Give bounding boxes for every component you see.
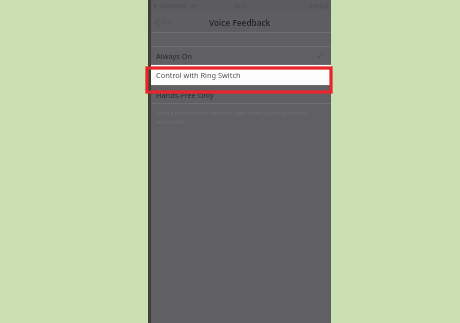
staticText: Voice Feedback (209, 17, 271, 28)
staticText: set to silent. (156, 118, 187, 125)
staticText: Siri will provide voice feedback, even w… (156, 109, 309, 116)
staticText: Hands-Free Only (156, 90, 214, 100)
staticText: Always On (156, 51, 193, 61)
button[interactable]: Control with Ring Switch (148, 65, 331, 85)
staticText: Control with Ring Switch (156, 70, 241, 80)
staticText: TELEKOM.RO (160, 3, 188, 9)
button[interactable]: Always On (148, 47, 331, 64)
button[interactable]: Hands-Free Only (148, 86, 331, 103)
